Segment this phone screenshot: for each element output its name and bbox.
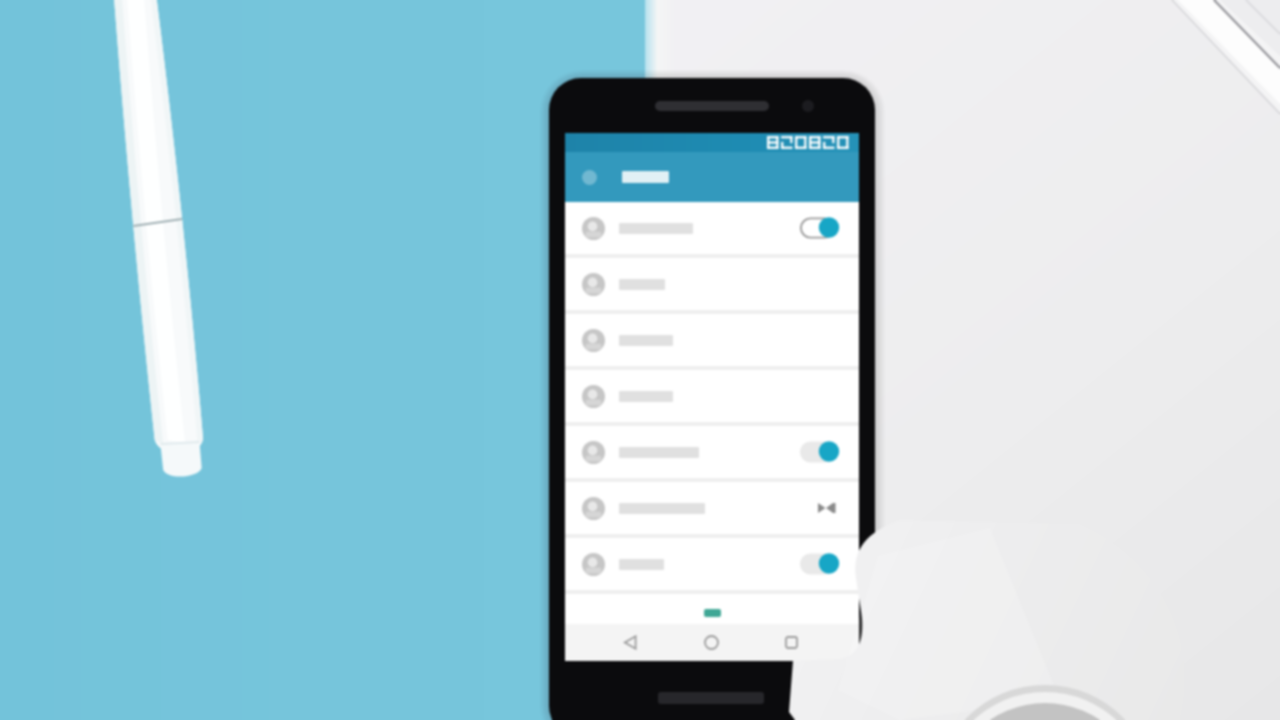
button[interactable]: Toggle setting — [800, 552, 838, 576]
button[interactable]: Toggle setting — [565, 202, 859, 254]
button[interactable]: More options — [816, 497, 838, 519]
button[interactable]: Toggle setting — [565, 538, 859, 590]
button[interactable]: Toggle setting — [800, 216, 838, 240]
button[interactable]: More options — [565, 482, 859, 534]
button[interactable]: Home — [694, 624, 728, 661]
button[interactable]: Open navigation menu — [576, 164, 602, 190]
button[interactable]: Toggle setting — [800, 440, 838, 464]
button[interactable]: Back — [613, 624, 647, 661]
button[interactable] — [565, 370, 859, 422]
button[interactable] — [565, 314, 859, 366]
button[interactable]: Recent apps — [774, 624, 808, 661]
button[interactable]: Toggle setting — [565, 426, 859, 478]
button[interactable] — [565, 258, 859, 310]
